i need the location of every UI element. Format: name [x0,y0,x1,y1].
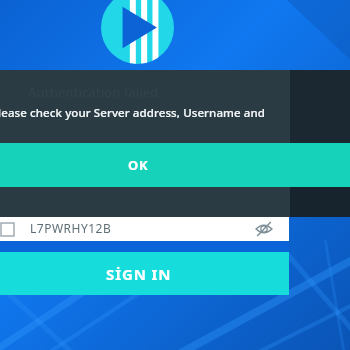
staticText: SİGN IN [106,264,172,284]
button[interactable]: OK [0,143,350,187]
staticText: L7PWRHY12B [30,220,112,236]
button[interactable]: SİGN IN [0,252,289,295]
button[interactable]: L7PWRHY12B [0,217,289,241]
staticText: lease check your Server address, Usernam… [0,105,288,121]
button[interactable]: Show password [254,219,274,239]
staticText: OK [128,156,149,174]
